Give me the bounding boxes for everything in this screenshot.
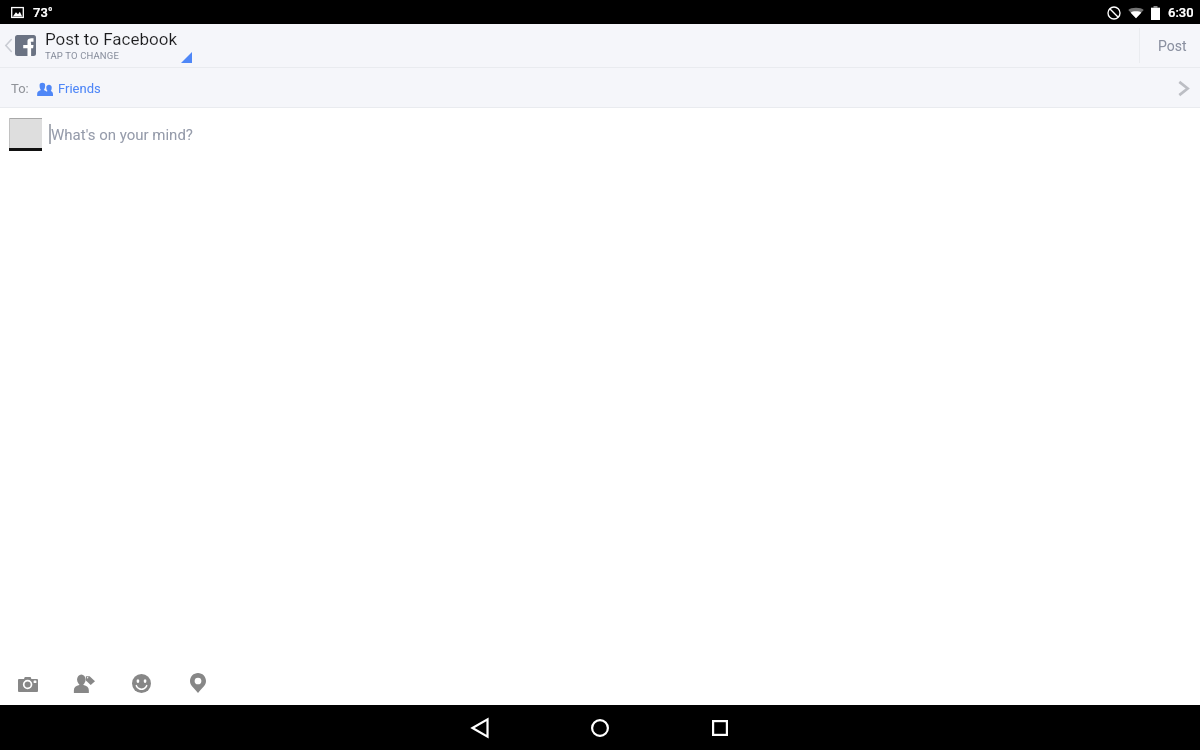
button[interactable]: What's on your mind? <box>0 108 1200 660</box>
staticText: Post <box>1158 38 1187 54</box>
button[interactable]: Add photo <box>8 665 48 701</box>
staticText: To: <box>11 81 29 96</box>
button[interactable]: Back <box>462 710 498 746</box>
staticText: 73° <box>33 5 53 20</box>
button[interactable]: Add feeling <box>121 665 161 701</box>
button[interactable]: Home <box>582 710 618 746</box>
button[interactable]: To: <box>0 68 1200 108</box>
button[interactable]: Tag people <box>64 665 104 701</box>
button[interactable]: Post to Facebook <box>0 24 187 67</box>
button[interactable]: Recents <box>702 710 738 746</box>
staticText: 6:30 <box>1168 5 1194 20</box>
button[interactable]: Post <box>1140 24 1200 67</box>
button[interactable]: Change audience <box>1167 72 1199 104</box>
staticText: Post to Facebook <box>45 29 177 49</box>
staticText: TAP TO CHANGE <box>45 50 119 61</box>
staticText: What's on your mind? <box>51 126 193 144</box>
staticText: Friends <box>58 81 101 96</box>
button[interactable]: Add location <box>178 665 218 701</box>
